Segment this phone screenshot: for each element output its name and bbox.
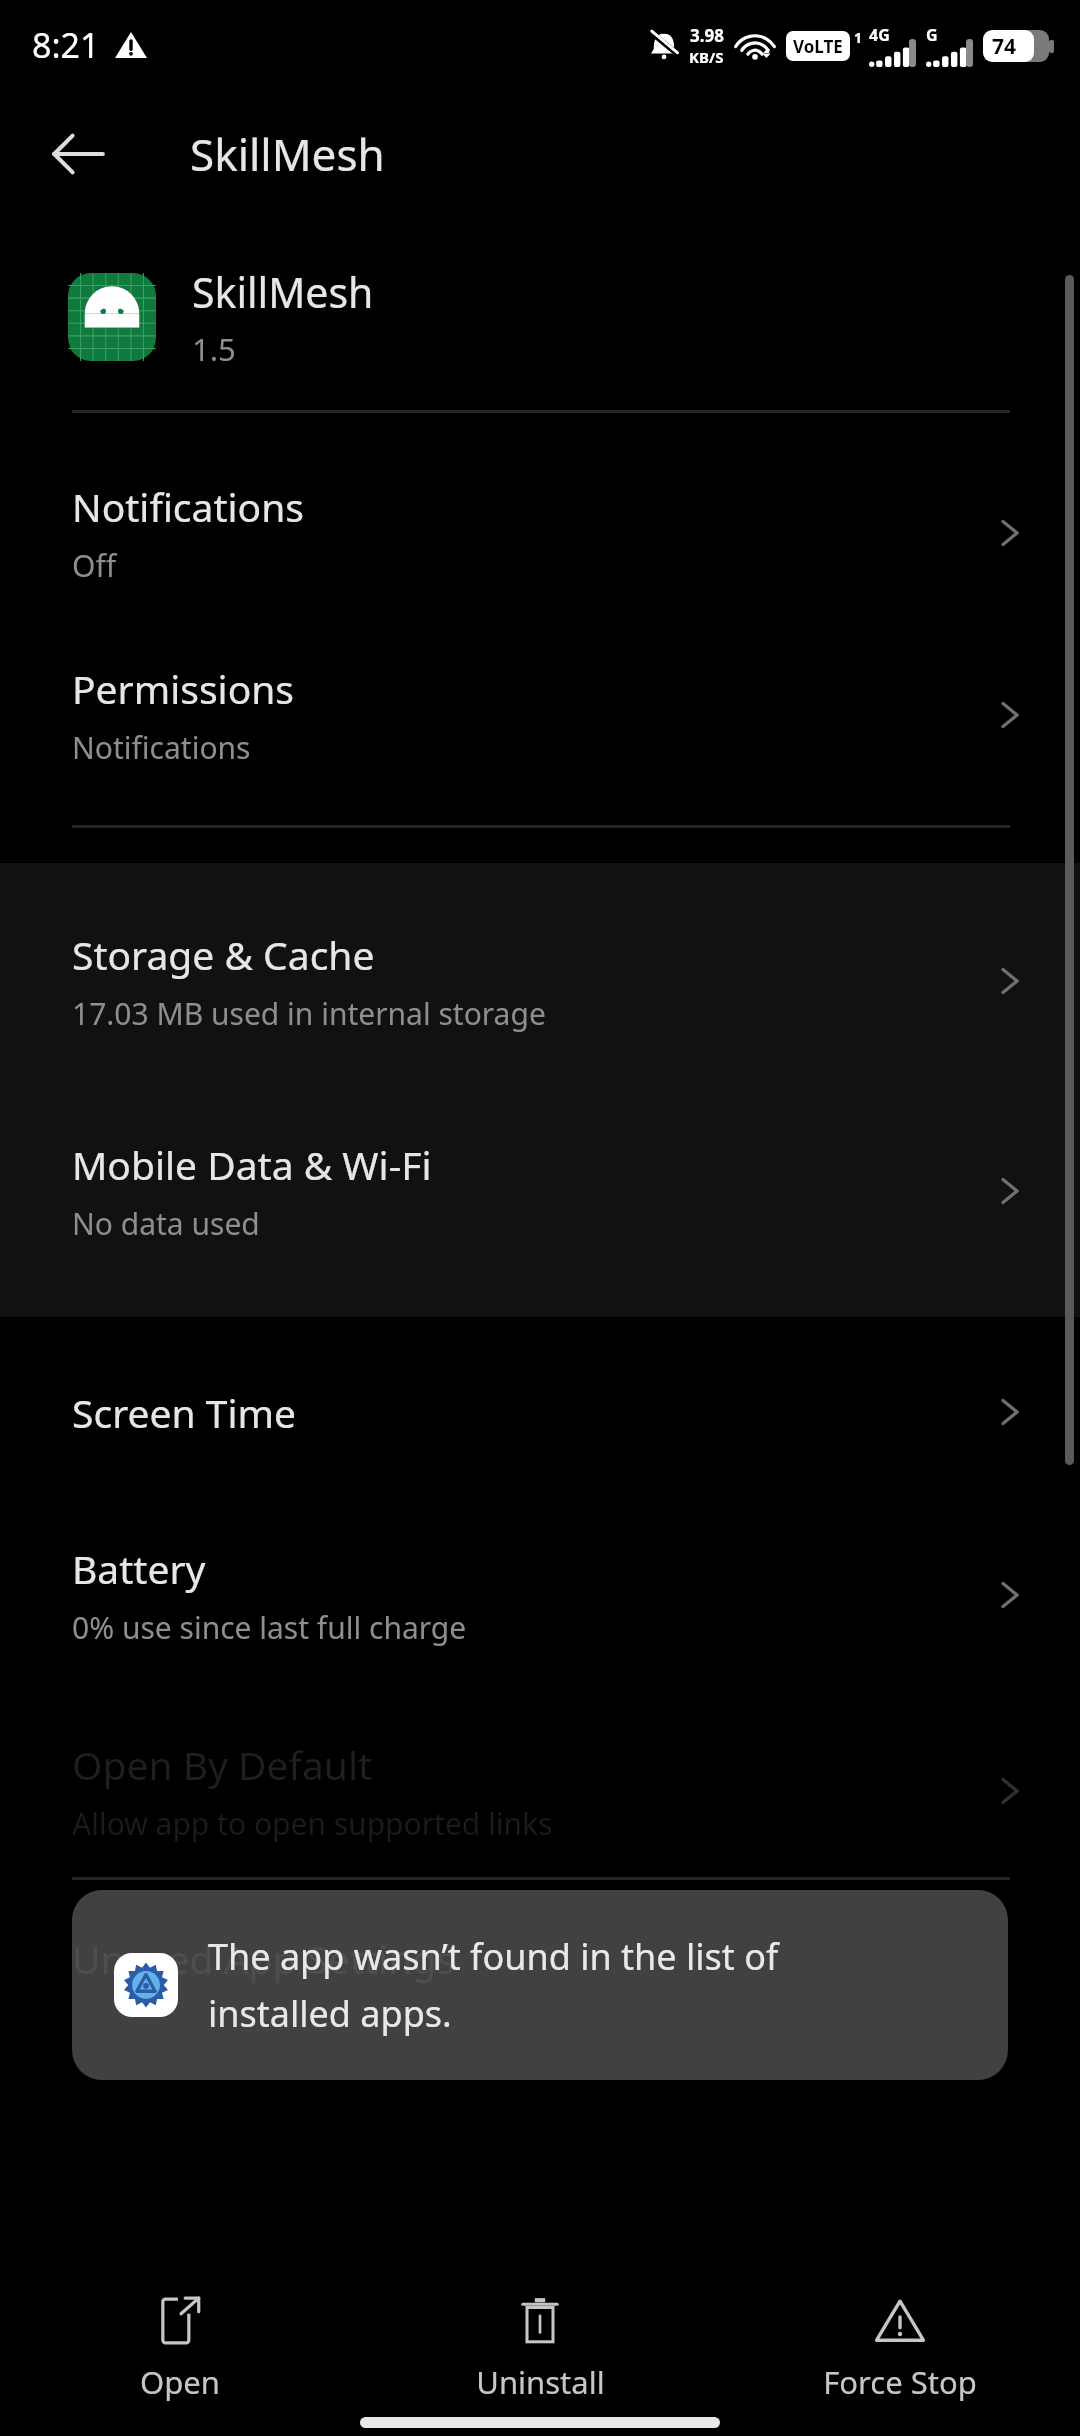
staticText: 17.03 MB used in internal storage	[72, 993, 546, 1034]
staticText: Mobile Data & Wi-Fi	[72, 1138, 432, 1191]
staticText: The app wasn’t found in the list of	[208, 1932, 779, 1981]
staticText: 8:21	[32, 22, 100, 68]
staticText: Open	[140, 2361, 220, 2403]
staticText: No data used	[72, 1203, 260, 1244]
button[interactable]: Battery	[0, 1519, 1080, 1671]
button[interactable]: Permissions	[0, 639, 1080, 791]
staticText: Screen Time	[72, 1386, 296, 1439]
button[interactable]: Open By Default	[0, 1715, 1080, 1867]
staticText: KB/S	[689, 47, 724, 67]
staticText: Open By Default	[72, 1738, 373, 1791]
button[interactable]: Uninstall	[360, 2290, 720, 2408]
staticText: 1	[854, 28, 863, 47]
staticText: VoLTE	[793, 35, 843, 58]
button[interactable]: SkillMesh	[0, 256, 1080, 378]
staticText: Allow app to open supported links	[72, 1803, 553, 1844]
button[interactable]: Storage & Cache	[0, 905, 1080, 1057]
staticText: SkillMesh	[192, 264, 374, 320]
staticText: SkillMesh	[190, 124, 385, 184]
staticText: Uninstall	[476, 2361, 605, 2403]
button[interactable]: Notifications	[0, 457, 1080, 609]
button[interactable]: Force Stop	[720, 2290, 1080, 2408]
button[interactable]: Mobile Data & Wi-Fi	[0, 1115, 1080, 1267]
button[interactable]: Screen Time	[0, 1357, 1080, 1467]
staticText: Notifications	[72, 480, 304, 533]
staticText: Storage & Cache	[72, 928, 375, 981]
staticText: G	[926, 24, 938, 46]
staticText: Battery	[72, 1542, 206, 1595]
staticText: Permissions	[72, 662, 295, 715]
staticText: 0% use since last full charge	[72, 1607, 467, 1648]
staticText: 3.98	[690, 24, 724, 47]
staticText: 74	[992, 32, 1017, 61]
staticText: 1.5	[192, 328, 236, 370]
staticText: Off	[72, 545, 117, 586]
button[interactable]: Open	[0, 2290, 360, 2408]
button[interactable]: Back	[40, 116, 116, 192]
staticText: Unused App Settings	[72, 1932, 455, 1985]
staticText: Notifications	[72, 727, 251, 768]
staticText: 4G	[869, 24, 890, 46]
staticText: Force Stop	[823, 2361, 977, 2403]
staticText: installed apps.	[208, 1989, 452, 2038]
